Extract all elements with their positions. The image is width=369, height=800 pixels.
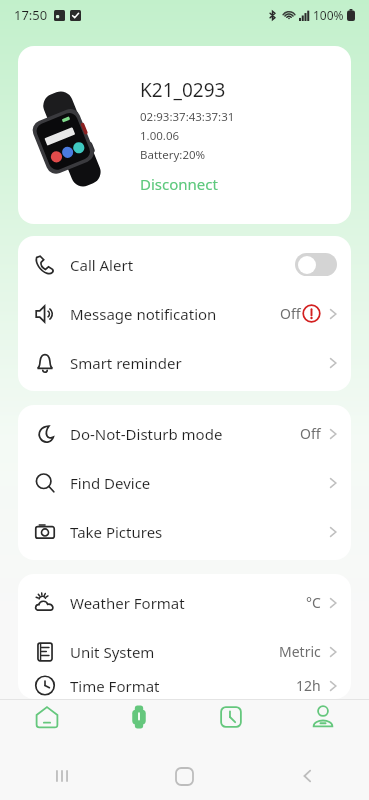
staticText: 100% <box>313 7 344 23</box>
button[interactable]: Find Device <box>18 458 351 507</box>
staticText: Take Pictures <box>70 522 163 542</box>
staticText: Off <box>280 304 301 323</box>
button[interactable]: Profile <box>277 700 369 752</box>
staticText: Message notification <box>70 304 217 324</box>
staticText: Battery:20% <box>140 147 206 163</box>
button[interactable]: Weather Format <box>18 578 351 627</box>
button[interactable]: Unit System <box>18 627 351 676</box>
button[interactable]: Call Alert <box>18 240 351 289</box>
button[interactable]: Take Pictures <box>18 507 351 556</box>
button[interactable]: Message notification <box>18 289 351 338</box>
staticText: Weather Format <box>70 593 185 613</box>
button[interactable]: Time Format <box>18 676 351 695</box>
staticText: Time Format <box>70 676 160 695</box>
other: Warning <box>302 304 321 323</box>
button[interactable]: Clock <box>185 700 277 752</box>
button[interactable]: Device <box>93 700 185 752</box>
staticText: Find Device <box>70 473 151 493</box>
staticText: Metric <box>279 642 321 661</box>
button[interactable]: Call Alert toggle <box>295 253 337 276</box>
staticText: Do-Not-Disturb mode <box>70 424 223 444</box>
button[interactable]: Smart reminder <box>18 338 351 387</box>
staticText: Disconnect <box>140 174 218 194</box>
staticText: 1.00.06 <box>140 128 180 144</box>
staticText: 02:93:37:43:37:31 <box>140 109 235 125</box>
button[interactable]: Do-Not-Disturb mode <box>18 409 351 458</box>
button[interactable]: K21_0293 <box>18 46 351 224</box>
staticText: 12h <box>296 676 321 695</box>
staticText: Off <box>300 424 321 443</box>
button[interactable]: Disconnect <box>140 174 218 194</box>
staticText: K21_0293 <box>140 77 226 103</box>
staticText: °C <box>306 593 321 612</box>
button[interactable]: Home <box>0 700 93 752</box>
staticText: 17:50 <box>14 6 48 24</box>
staticText: Call Alert <box>70 255 134 275</box>
staticText: Smart reminder <box>70 353 182 373</box>
staticText: Unit System <box>70 642 155 662</box>
